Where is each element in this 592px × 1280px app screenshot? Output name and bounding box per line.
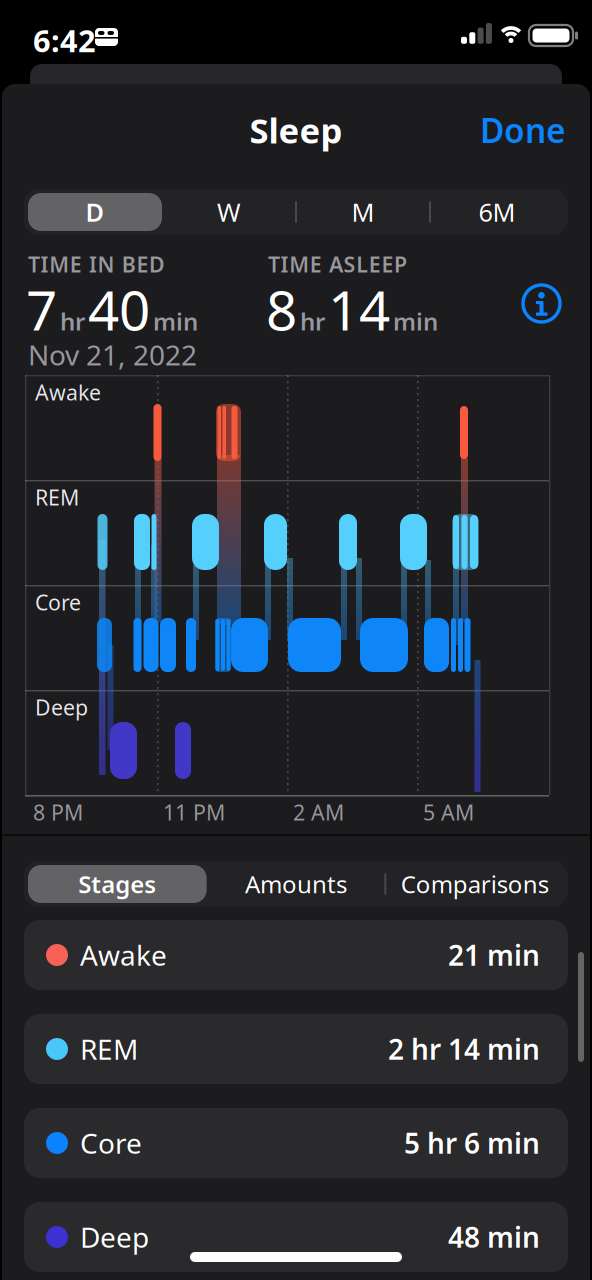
button[interactable] [523,285,560,322]
staticText: M [351,195,374,229]
staticText: 8 [266,273,297,346]
button[interactable]: 6M [430,189,564,235]
staticText: 7 [26,273,57,346]
staticText: Core [80,1124,142,1162]
staticText: 6:42 [33,20,96,61]
button[interactable]: Comparisons [385,861,564,907]
staticText: 8 PM [33,798,83,826]
staticText: 2 AM [293,798,344,826]
button[interactable]: M [296,189,430,235]
staticText: Sleep [249,107,342,153]
staticText: min [153,305,198,337]
staticText: 5 AM [423,798,474,826]
staticText: Deep [35,693,88,721]
staticText: 21 min [448,936,540,974]
button[interactable]: Amounts [207,861,385,907]
button[interactable]: Stages [28,861,207,907]
staticText: 14 [328,273,390,346]
staticText: TIME ASLEEP [268,250,407,278]
staticText: hr [60,305,85,337]
staticText: Awake [80,936,167,974]
staticText: 48 min [448,1218,540,1256]
staticText: Awake [35,378,101,406]
staticText: 2 hr 14 min [388,1030,540,1068]
staticText: Done [480,108,566,152]
staticText: Comparisons [401,868,549,900]
button[interactable]: Done [480,108,566,152]
staticText: Core [35,588,81,616]
staticText: REM [80,1030,138,1068]
button[interactable] [24,189,568,235]
staticText: 11 PM [163,798,225,826]
staticText: Stages [78,868,156,900]
staticText: D [85,195,104,229]
staticText: Amounts [245,868,347,900]
staticText: 5 hr 6 min [404,1124,540,1162]
staticText: REM [35,483,79,511]
button[interactable]: W [162,189,296,235]
staticText: W [217,195,241,229]
button[interactable] [24,861,568,907]
staticText: min [393,305,438,337]
staticText: TIME IN BED [28,250,165,278]
button[interactable]: Awake [24,920,568,990]
staticText: 40 [88,273,150,346]
button[interactable]: REM [24,1014,568,1084]
staticText: Nov 21, 2022 [28,336,197,373]
staticText: hr [300,305,325,337]
staticText: Deep [80,1218,149,1256]
staticText: 6M [478,195,515,229]
button[interactable]: Core [24,1108,568,1178]
button[interactable]: Deep [24,1202,568,1272]
button[interactable]: D [28,189,162,235]
